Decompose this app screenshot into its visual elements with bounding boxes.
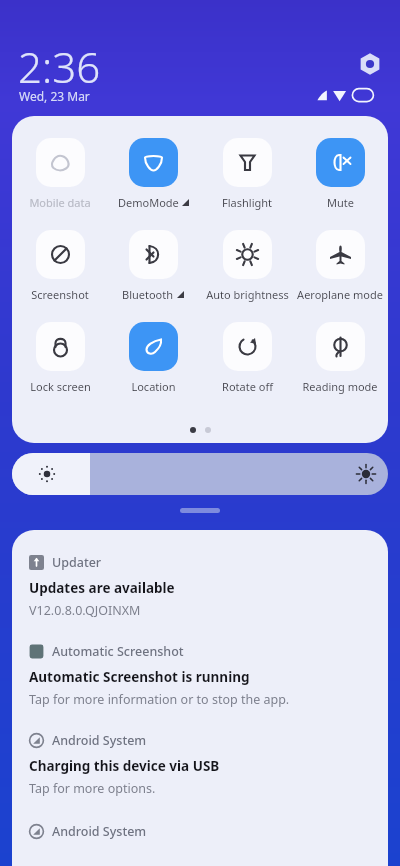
staticText: Flashlight xyxy=(222,195,272,210)
staticText: Mobile data xyxy=(29,195,91,210)
button[interactable]: Lock screen xyxy=(15,320,105,394)
staticText: Tap for more options. xyxy=(29,780,156,797)
staticText: Reading mode xyxy=(302,379,378,394)
button[interactable]: Screenshot xyxy=(15,228,105,302)
button[interactable]: Android System xyxy=(29,823,374,840)
button[interactable]: Reading mode xyxy=(295,320,385,394)
staticText: Bluetooth xyxy=(122,287,174,302)
button[interactable]: Aeroplane mode xyxy=(295,228,385,302)
staticText: Lock screen xyxy=(30,379,91,394)
button[interactable]: Rotate off xyxy=(202,320,292,394)
button[interactable]: Bluetooth xyxy=(108,228,198,302)
staticText: Location xyxy=(131,379,176,394)
button[interactable]: Brightness xyxy=(12,453,388,495)
staticText: Charging this device via USB xyxy=(29,757,220,775)
button[interactable]: Location xyxy=(108,320,198,394)
button[interactable]: Mute xyxy=(295,136,385,210)
staticText: Rotate off xyxy=(222,379,273,394)
button[interactable]: Settings xyxy=(358,52,382,76)
staticText: DemoMode xyxy=(118,195,179,210)
button[interactable]: Flashlight xyxy=(202,136,292,210)
button[interactable]: Android System xyxy=(29,732,374,797)
staticText: Android System xyxy=(52,732,147,749)
staticText: Updates are available xyxy=(29,579,175,597)
button[interactable]: Updater xyxy=(29,554,374,619)
staticText: Screenshot xyxy=(31,287,89,302)
button[interactable]: DemoMode xyxy=(108,136,198,210)
staticText: Mute xyxy=(327,195,354,210)
staticText: 2:36 xyxy=(18,38,101,95)
staticText: V12.0.8.0.QJOINXM xyxy=(29,602,141,619)
staticText: Updater xyxy=(52,554,102,571)
staticText: Wed, 23 Mar xyxy=(19,88,90,104)
button[interactable]: Mobile data xyxy=(15,136,105,210)
staticText: Automatic Screenshot xyxy=(52,643,184,660)
staticText: Android System xyxy=(52,823,147,840)
button[interactable]: Automatic Screenshot xyxy=(29,643,374,708)
staticText: Aeroplane mode xyxy=(297,287,383,302)
staticText: Automatic Screenshot is running xyxy=(29,668,250,686)
staticText: Tap for more information or to stop the … xyxy=(29,691,290,708)
staticText: Auto brightness xyxy=(206,287,289,302)
button[interactable]: Auto brightness xyxy=(202,228,292,302)
